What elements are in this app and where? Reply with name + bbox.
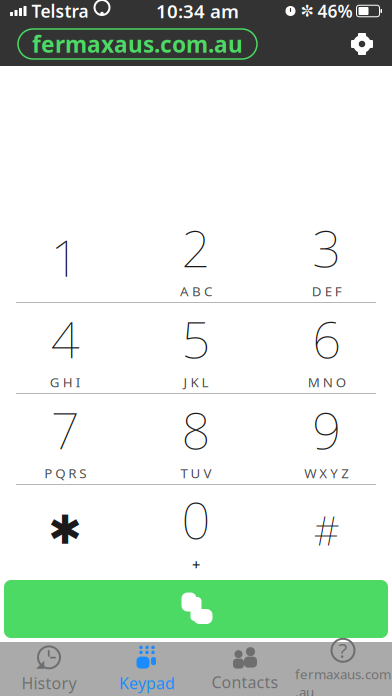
- staticText: ?: [338, 637, 347, 664]
- button[interactable]: 9: [261, 394, 392, 484]
- staticText: W X Y Z: [304, 464, 349, 482]
- staticText: #: [314, 503, 340, 556]
- button[interactable]: 6: [261, 303, 392, 393]
- staticText: 3: [312, 214, 341, 281]
- button[interactable]: ✱: [0, 485, 131, 575]
- staticText: fermaxaus.com.au: [32, 29, 243, 59]
- staticText: fermaxaus.com.au: [295, 665, 391, 696]
- staticText: 10:34 am: [156, 0, 239, 23]
- staticText: +: [192, 555, 200, 574]
- staticText: 1: [51, 223, 80, 291]
- staticText: 7: [51, 396, 80, 463]
- staticText: 6: [312, 305, 341, 372]
- staticText: Keypad: [119, 672, 175, 694]
- staticText: J K L: [183, 373, 208, 391]
- button[interactable]: 8: [131, 394, 261, 484]
- staticText: M N O: [308, 373, 346, 391]
- staticText: History: [21, 672, 76, 694]
- button[interactable]: 1: [0, 212, 131, 302]
- button[interactable]: Call: [4, 580, 388, 638]
- button[interactable]: 5: [131, 303, 261, 393]
- button[interactable]: fermaxaus.com.au: [18, 29, 257, 59]
- staticText: 5: [181, 305, 210, 372]
- button[interactable]: 0: [131, 485, 261, 575]
- button[interactable]: ◢: [0, 643, 98, 695]
- button[interactable]: Settings: [340, 22, 384, 66]
- staticText: 0: [181, 486, 210, 553]
- staticText: ◢: [36, 658, 44, 670]
- staticText: T U V: [180, 464, 211, 482]
- staticText: G H I: [50, 373, 81, 391]
- button[interactable]: #: [261, 485, 392, 575]
- button[interactable]: 3: [261, 212, 392, 302]
- button[interactable]: ?: [294, 643, 392, 695]
- button[interactable]: Contacts: [196, 643, 294, 695]
- staticText: P Q R S: [44, 464, 86, 482]
- button[interactable]: Keypad: [98, 643, 196, 695]
- staticText: Telstra: [31, 0, 88, 22]
- staticText: 9: [312, 396, 341, 463]
- button[interactable]: 2: [131, 212, 261, 302]
- staticText: 2: [181, 214, 210, 281]
- staticText: 46%: [317, 0, 352, 22]
- staticText: Contacts: [211, 671, 278, 693]
- staticText: ✼: [300, 2, 313, 20]
- staticText: ✱: [48, 507, 82, 553]
- button[interactable]: 4: [0, 303, 131, 393]
- button[interactable]: 7: [0, 394, 131, 484]
- staticText: 8: [181, 396, 210, 463]
- staticText: 4: [51, 305, 80, 372]
- staticText: A B C: [180, 282, 212, 300]
- staticText: D E F: [312, 282, 342, 300]
